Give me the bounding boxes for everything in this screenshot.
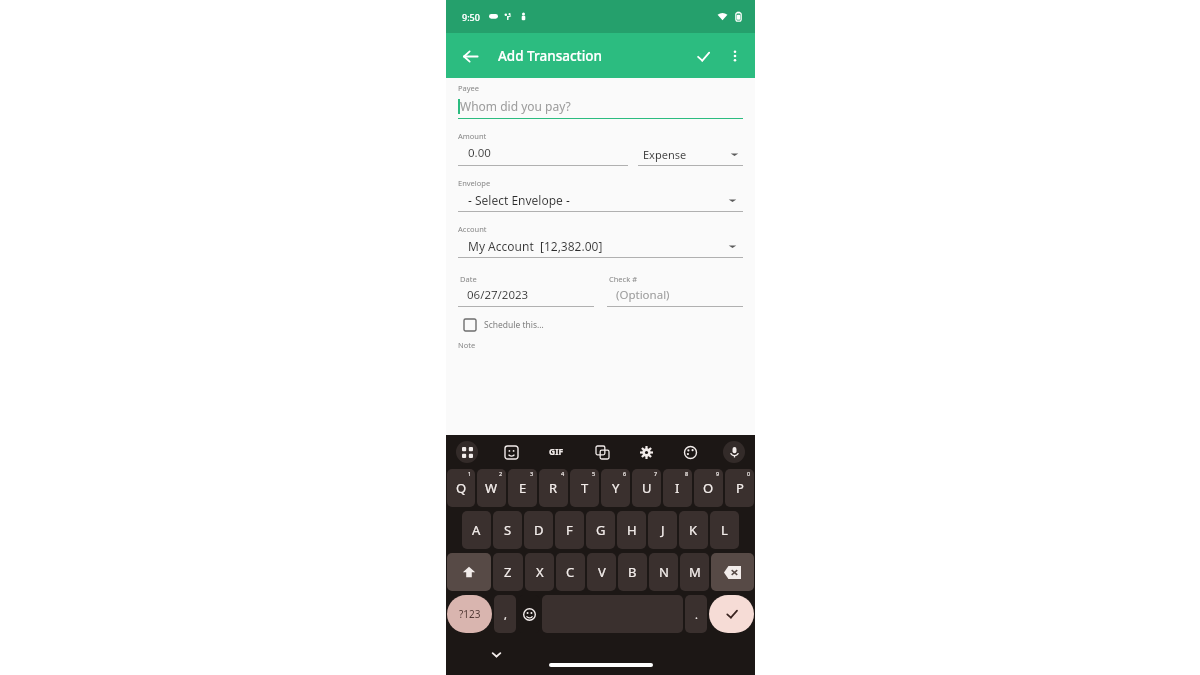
button[interactable]: Translate <box>591 441 613 463</box>
button[interactable]: R <box>539 469 568 507</box>
button[interactable]: Theme <box>679 441 701 463</box>
staticText: 1 <box>468 470 472 477</box>
staticText: 0.00 <box>468 145 491 161</box>
button[interactable]: J <box>648 511 677 549</box>
staticText: D <box>534 521 544 539</box>
staticText: 9:50 <box>462 11 480 23</box>
staticText: 3 <box>530 470 534 477</box>
button[interactable]: E <box>508 469 537 507</box>
staticText: Date <box>460 274 477 284</box>
staticText: Amount <box>458 131 487 141</box>
staticText: My Account [12,382.00] <box>468 238 728 254</box>
button[interactable]: More options <box>719 40 751 72</box>
button[interactable]: . <box>685 595 707 633</box>
staticText: M <box>689 563 701 581</box>
button[interactable]: G <box>586 511 615 549</box>
button[interactable]: - Select Envelope - <box>458 192 743 212</box>
staticText: P <box>736 479 744 497</box>
staticText: Add Transaction <box>498 47 603 65</box>
staticText: B <box>628 563 637 581</box>
button[interactable]: W <box>477 469 506 507</box>
staticText: Account <box>458 224 487 234</box>
staticText: Check # <box>609 274 638 284</box>
staticText: X <box>536 563 544 581</box>
staticText: I <box>675 479 680 497</box>
staticText: T <box>581 479 589 497</box>
button[interactable]: Emoji <box>518 595 540 633</box>
button[interactable]: Hide keyboard <box>484 642 508 666</box>
staticText: Y <box>612 479 620 497</box>
staticText: W <box>485 479 498 497</box>
staticText: Payee <box>458 83 480 93</box>
button[interactable]: ?123 <box>447 595 492 633</box>
button[interactable]: Backspace <box>711 553 754 591</box>
button[interactable]: My Account [12,382.00] <box>458 238 743 258</box>
staticText: . <box>695 607 698 622</box>
button[interactable]: Whom did you pay? <box>458 98 743 119</box>
staticText: S <box>504 521 512 539</box>
staticText: 4 <box>561 470 565 477</box>
button[interactable]: U <box>632 469 661 507</box>
button[interactable]: L <box>710 511 739 549</box>
button[interactable]: Shift <box>447 553 491 591</box>
button[interactable]: T <box>570 469 599 507</box>
button[interactable]: F <box>555 511 584 549</box>
staticText: F <box>566 521 573 539</box>
button[interactable]: Schedule this… <box>464 319 544 331</box>
button[interactable]: S <box>493 511 522 549</box>
staticText: E <box>519 479 527 497</box>
staticText: N <box>659 563 669 581</box>
button[interactable]: O <box>694 469 723 507</box>
button[interactable]: P <box>725 469 754 507</box>
staticText: 2 <box>499 470 503 477</box>
button[interactable]: GIF <box>544 440 568 464</box>
button[interactable]: V <box>587 553 616 591</box>
button[interactable]: Expense <box>638 147 743 166</box>
button[interactable]: 06/27/2023 <box>458 287 594 307</box>
staticText: (Optional) <box>616 287 670 303</box>
staticText: Z <box>504 563 512 581</box>
staticText: 6 <box>623 470 627 477</box>
button[interactable]: Save <box>687 40 719 72</box>
button[interactable]: B <box>618 553 647 591</box>
button[interactable]: Toolbar <box>456 441 478 463</box>
button[interactable]: Voice input <box>723 441 745 463</box>
button[interactable]: M <box>680 553 709 591</box>
staticText: 0 <box>747 470 751 477</box>
staticText: O <box>703 479 714 497</box>
staticText: Expense <box>643 147 730 162</box>
button[interactable]: 0.00 <box>458 145 628 166</box>
button[interactable]: I <box>663 469 692 507</box>
staticText: H <box>627 521 637 539</box>
staticText: R <box>549 479 558 497</box>
button[interactable]: Enter <box>709 595 754 633</box>
button[interactable]: Q <box>447 469 475 507</box>
button[interactable]: Stickers <box>500 441 522 463</box>
button[interactable]: , <box>494 595 516 633</box>
staticText: , <box>504 607 507 622</box>
button[interactable]: A <box>462 511 491 549</box>
button[interactable]: X <box>525 553 554 591</box>
staticText: Whom did you pay? <box>460 98 571 114</box>
button[interactable]: N <box>649 553 678 591</box>
staticText: Schedule this… <box>484 319 544 331</box>
staticText: L <box>721 521 728 539</box>
button[interactable]: (Optional) <box>607 287 743 307</box>
staticText: 5 <box>592 470 596 477</box>
staticText: Envelope <box>458 178 491 188</box>
button[interactable]: Back <box>454 40 486 72</box>
staticText: J <box>661 521 665 539</box>
staticText: V <box>598 563 606 581</box>
button[interactable]: D <box>524 511 553 549</box>
staticText: 06/27/2023 <box>467 287 529 303</box>
button[interactable]: Z <box>493 553 523 591</box>
staticText: A <box>472 521 481 539</box>
button[interactable]: Settings <box>635 441 657 463</box>
staticText: 9 <box>716 470 720 477</box>
button[interactable]: C <box>556 553 585 591</box>
button[interactable]: Y <box>601 469 630 507</box>
button[interactable]: K <box>679 511 708 549</box>
staticText: Note <box>458 340 476 350</box>
button[interactable]: H <box>617 511 646 549</box>
